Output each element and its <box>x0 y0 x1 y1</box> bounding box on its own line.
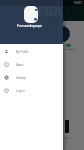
staticText: 16:31 <box>74 1 83 5</box>
staticText: About <box>16 63 24 67</box>
staticText: Logout <box>16 89 25 93</box>
staticText: Settings <box>16 76 26 80</box>
staticText: My Profile <box>16 50 29 54</box>
staticText: Fernandopepe <box>17 23 43 28</box>
button[interactable]: Settings <box>0 71 63 84</box>
button[interactable]: My Profile <box>0 45 63 58</box>
button[interactable]: Logout <box>0 84 63 97</box>
staticText: AT <box>47 13 61 28</box>
button[interactable]: About <box>0 58 63 71</box>
staticText: FGA <box>37 2 63 20</box>
